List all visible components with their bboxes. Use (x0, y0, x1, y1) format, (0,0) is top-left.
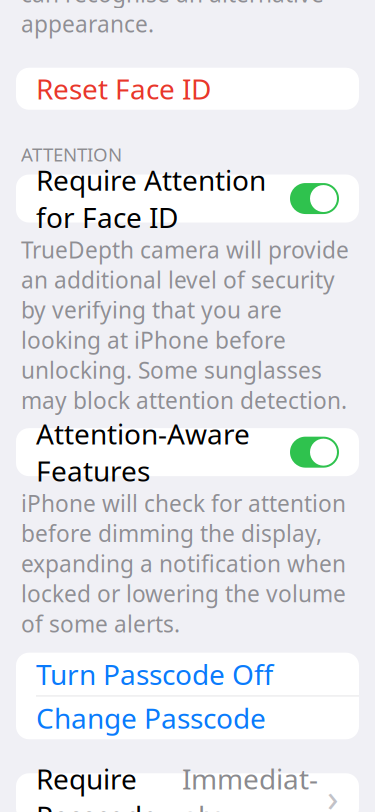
button[interactable]: Require Passcode (16, 773, 359, 812)
button[interactable]: Reset Face ID (16, 68, 359, 110)
staticText: ATTENTION (21, 142, 122, 167)
staticText: Require Attention for Face ID (36, 161, 266, 236)
staticText: Attention-Aware Features (36, 415, 250, 489)
staticText: In addition to continuously learning how… (21, 0, 351, 39)
staticText: Immediately (182, 760, 318, 812)
staticText: Turn Passcode Off (36, 656, 273, 693)
staticText: TrueDepth camera will provide an additio… (21, 234, 349, 415)
button[interactable]: Change Passcode (16, 696, 359, 739)
button[interactable]: Attention-Aware Features (16, 428, 359, 476)
staticText: Change Passcode (36, 699, 266, 736)
staticText: Require Passcode (36, 760, 158, 812)
staticText: › (327, 772, 339, 812)
button[interactable]: Require Attention for Face ID (16, 174, 359, 222)
button[interactable]: Turn Passcode Off (16, 653, 359, 696)
staticText: iPhone will check for attention before d… (21, 488, 346, 639)
staticText: Reset Face ID (36, 70, 211, 107)
